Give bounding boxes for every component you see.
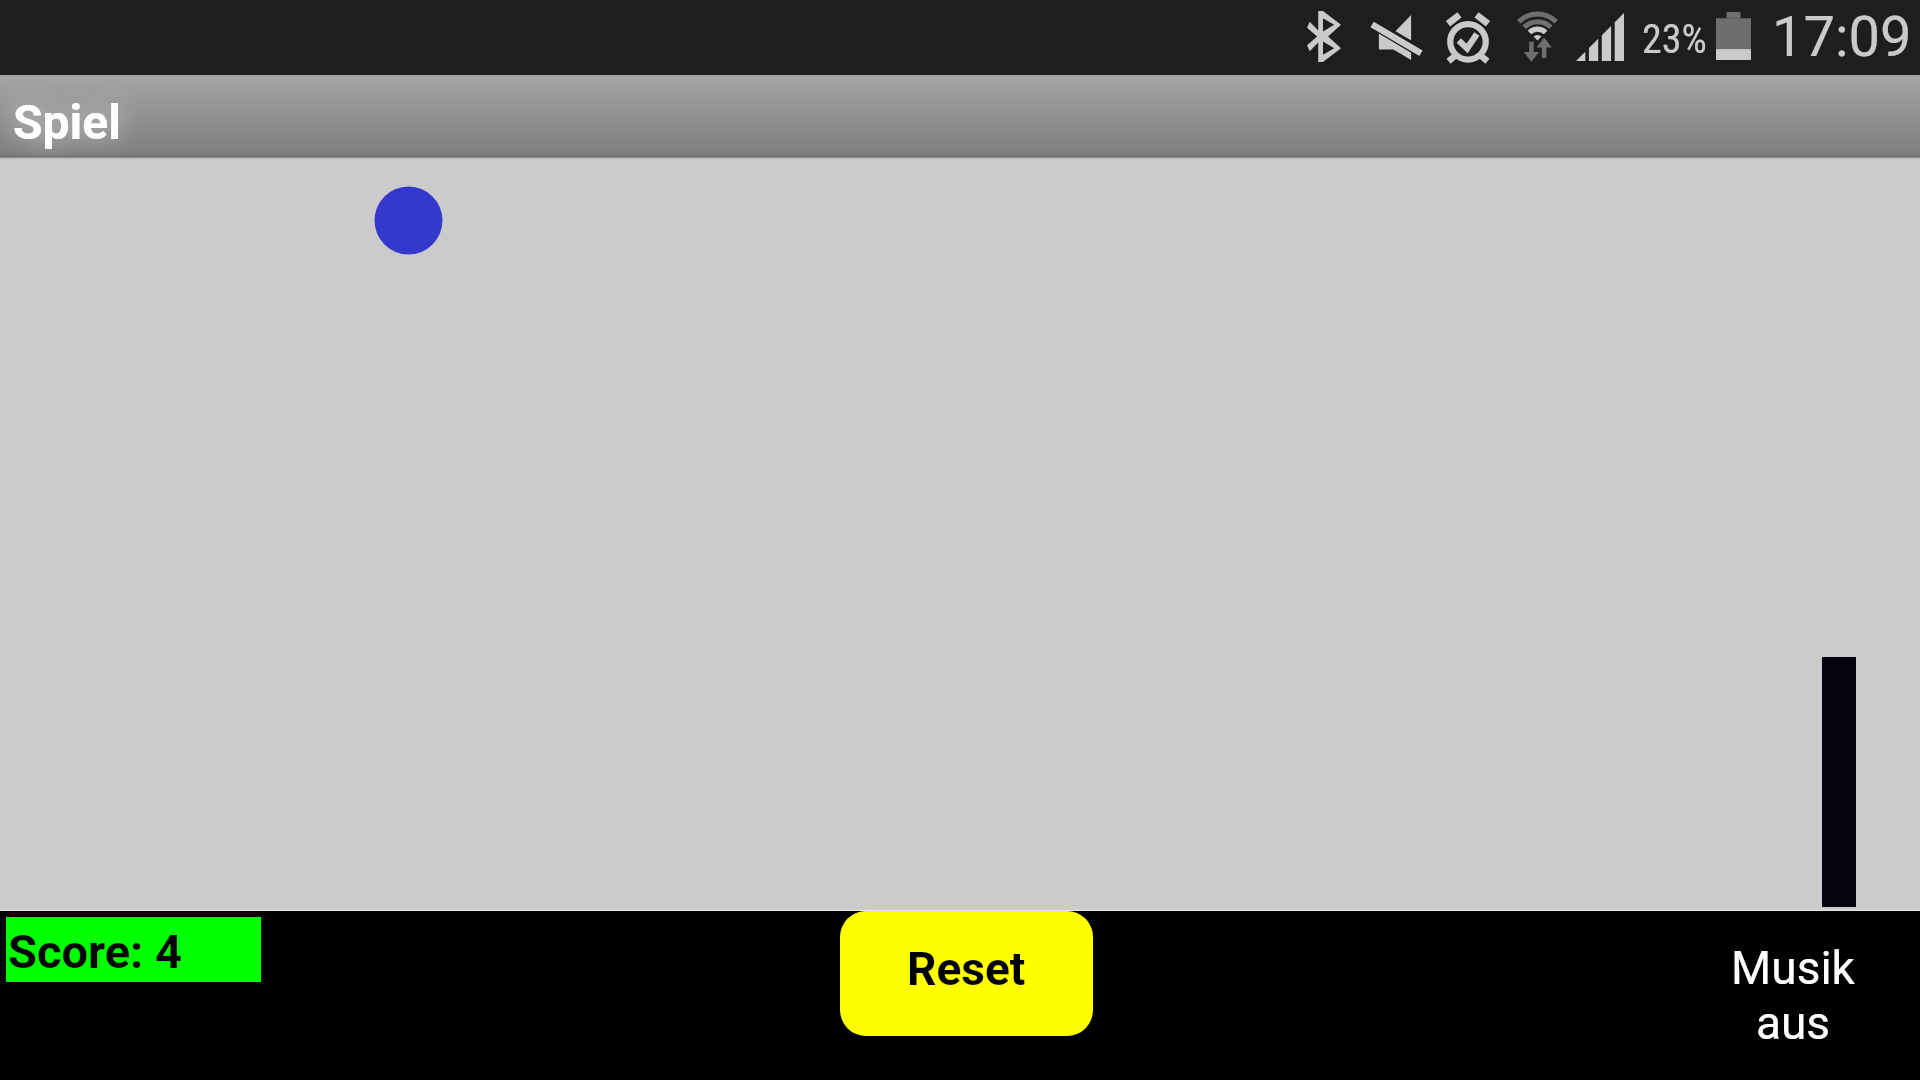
button[interactable]: Musik aus — [1693, 936, 1893, 1064]
staticText: Musik aus — [1693, 941, 1893, 1050]
other: Sound off — [1369, 13, 1421, 61]
staticText: Score: 4 — [8, 924, 183, 979]
staticText: Spiel — [13, 94, 121, 150]
other: Alarm set — [1443, 11, 1493, 62]
staticText: 17:09 — [1772, 4, 1912, 70]
button[interactable]: Reset — [840, 911, 1093, 1036]
button[interactable]: Spielfeld — [0, 159, 1920, 911]
staticText: 23% — [1642, 16, 1707, 63]
staticText: Reset — [907, 942, 1026, 996]
other: Mobile signal — [1576, 13, 1624, 61]
other: Battery 23 percent — [1716, 12, 1751, 60]
other: Wi-Fi — [1511, 9, 1564, 62]
button[interactable]: Score: 4 — [6, 917, 261, 982]
other: Bluetooth — [1307, 11, 1341, 62]
